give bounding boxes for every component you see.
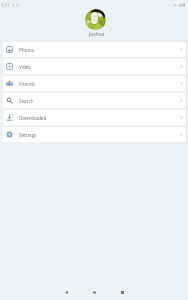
button[interactable]: Friends	[3, 76, 185, 91]
staticText: Settings	[19, 132, 37, 138]
button[interactable]: Profile photo	[85, 9, 106, 30]
staticText: Search	[19, 98, 34, 104]
button[interactable]: Search	[3, 93, 185, 108]
staticText: Photos	[19, 47, 35, 53]
staticText: 4:37	[1, 2, 10, 8]
staticText: Video	[19, 64, 32, 70]
staticText: Joshua	[89, 31, 105, 38]
staticText: Friends	[19, 81, 35, 87]
staticText: Downloaded	[19, 115, 47, 121]
button[interactable]: Downloaded	[3, 110, 185, 125]
button[interactable]: Settings	[3, 127, 185, 142]
button[interactable]: Recents	[108, 284, 136, 300]
button[interactable]: Home	[80, 284, 108, 300]
button[interactable]: Back	[52, 284, 80, 300]
button[interactable]: Video	[3, 59, 185, 74]
button[interactable]: Photos	[3, 42, 185, 57]
